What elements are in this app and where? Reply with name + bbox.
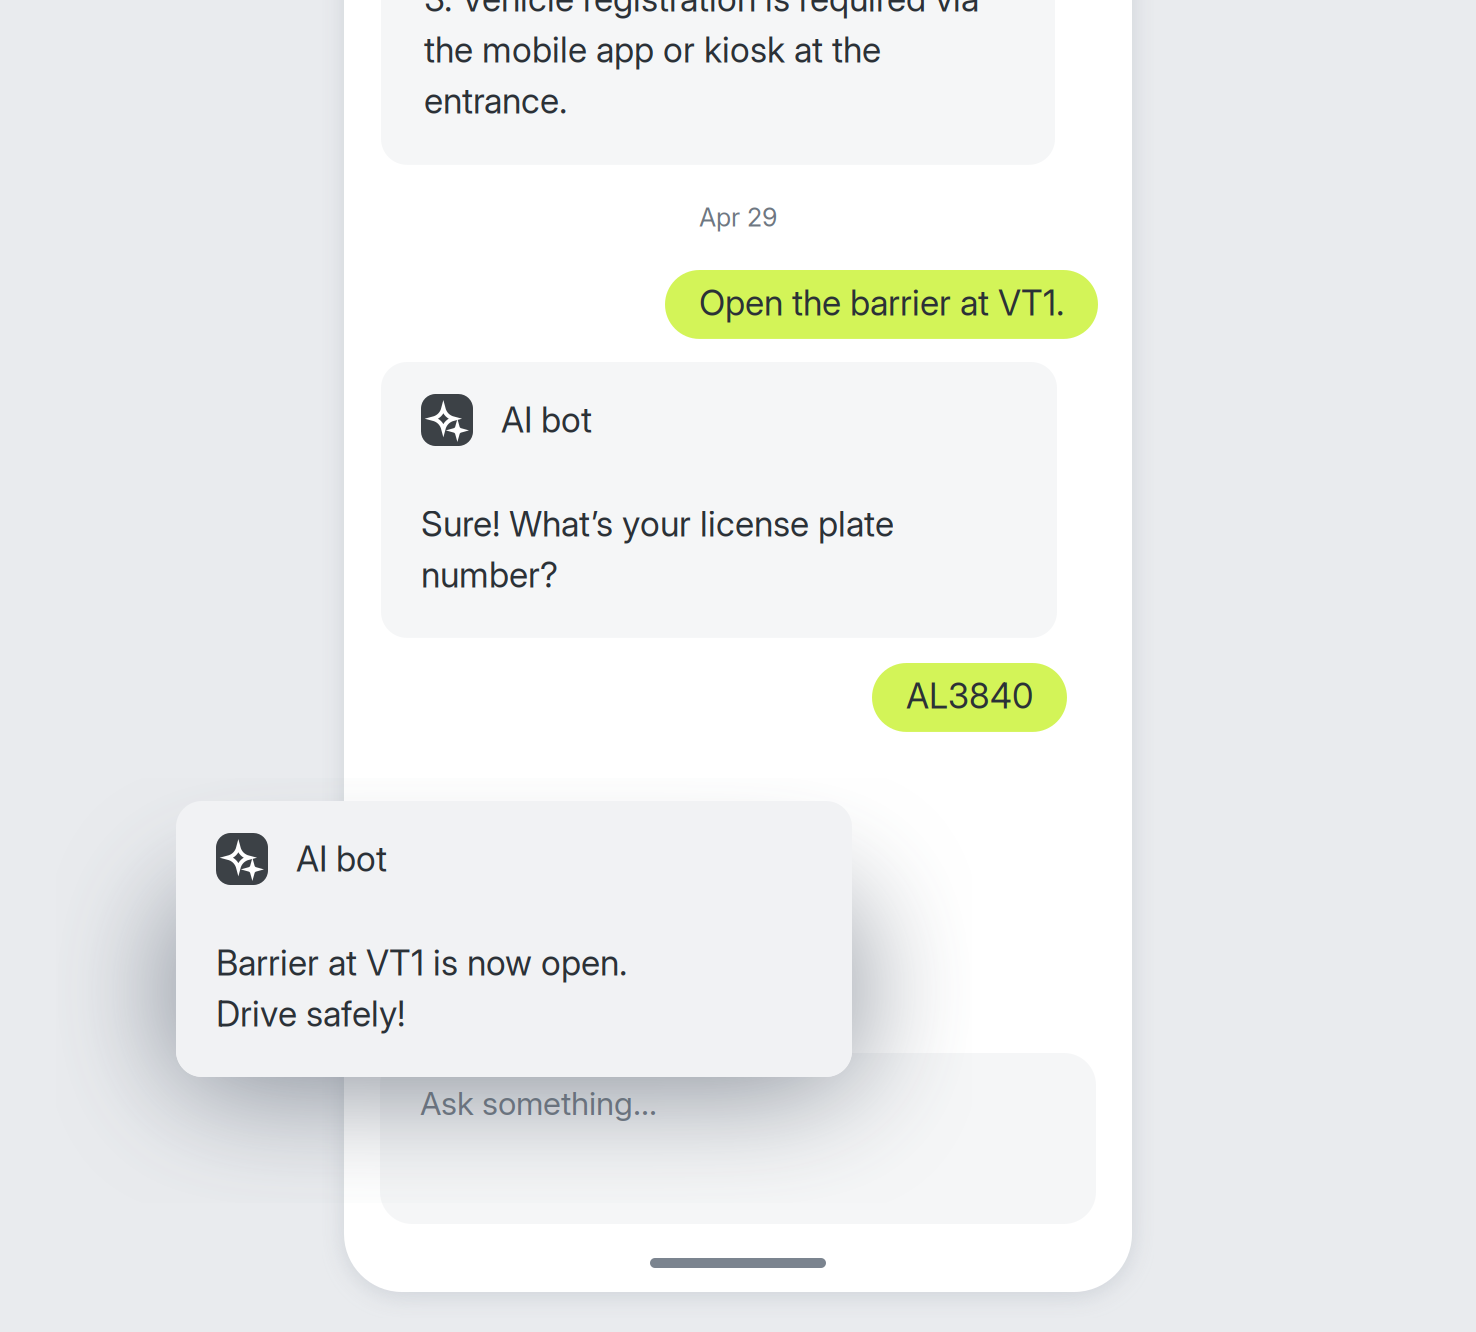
staticText: AL3840	[906, 675, 1033, 717]
staticText: Sure! What’s your license plate number?	[421, 503, 894, 596]
staticText: AI bot	[501, 399, 592, 441]
staticText: Apr 29	[699, 202, 777, 233]
staticText: 3. Vehicle registration is required via …	[424, 0, 979, 122]
button[interactable]: Ask something…	[380, 1053, 1096, 1224]
staticText: Ask something…	[420, 1084, 657, 1123]
staticText: AI bot	[296, 838, 387, 880]
staticText: Open the barrier at VT1.	[699, 282, 1064, 324]
staticText: Barrier at VT1 is now open. Drive safely…	[216, 942, 627, 1035]
